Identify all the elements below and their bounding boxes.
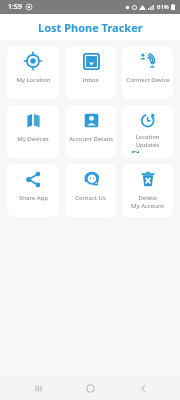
- button[interactable]: Contact Us: [65, 164, 116, 217]
- staticText: My Location: [16, 76, 51, 84]
- staticText: Delete My Account: [131, 194, 164, 210]
- staticText: Inbox: [82, 76, 99, 84]
- button[interactable]: Connect Device: [122, 46, 173, 99]
- staticText: Account Details: [69, 135, 113, 143]
- staticText: 61%: [157, 3, 169, 11]
- staticText: 1:59: [8, 2, 22, 12]
- button[interactable]: Recents: [23, 376, 53, 400]
- button[interactable]: Share App: [7, 164, 59, 217]
- staticText: My Devices: [17, 135, 49, 143]
- staticText: Location Updates: [124, 133, 171, 149]
- button[interactable]: My Devices: [7, 105, 59, 158]
- button[interactable]: Account Details: [65, 105, 116, 158]
- button[interactable]: Back: [128, 376, 158, 400]
- button[interactable]: Delete My Account: [122, 164, 173, 217]
- staticText: Lost Phone Tracker: [38, 20, 143, 35]
- button[interactable]: Home: [75, 376, 105, 400]
- button[interactable]: Location Updates: [122, 105, 173, 158]
- button[interactable]: My Location: [7, 46, 59, 99]
- staticText: Contact Us: [75, 194, 106, 202]
- staticText: Share App: [19, 194, 48, 202]
- button[interactable]: Inbox: [65, 46, 116, 99]
- staticText: Connect Device: [126, 76, 170, 84]
